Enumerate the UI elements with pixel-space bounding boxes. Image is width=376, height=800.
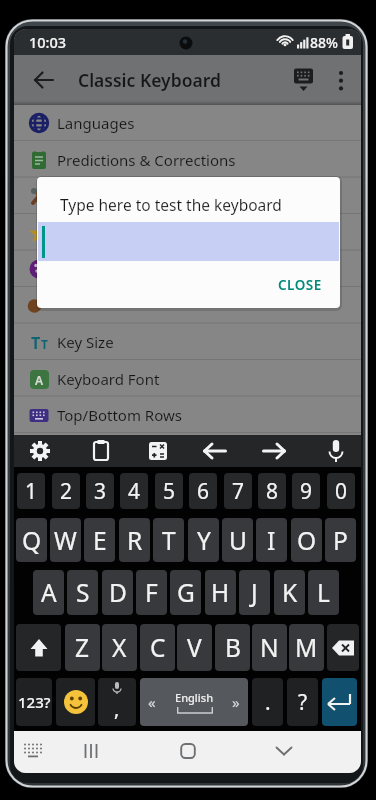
- button[interactable]: G: [170, 570, 201, 615]
- button[interactable]: O: [291, 518, 322, 562]
- button[interactable]: 7: [224, 473, 252, 509]
- staticText: Type here to test the keyboard: [60, 194, 282, 215]
- button[interactable]: D: [102, 570, 133, 615]
- button[interactable]: 6: [189, 473, 217, 509]
- staticText: V: [187, 631, 202, 664]
- button[interactable]: X: [102, 624, 137, 671]
- button[interactable]: 3: [86, 473, 114, 509]
- button[interactable]: Z: [65, 624, 100, 671]
- staticText: 9: [300, 477, 313, 506]
- staticText: Key Size: [57, 332, 114, 352]
- button[interactable]: F: [136, 570, 167, 615]
- staticText: L: [317, 576, 330, 609]
- button[interactable]: 9: [292, 473, 320, 509]
- button[interactable]: «: [140, 678, 248, 726]
- button[interactable]: J: [239, 570, 270, 615]
- button[interactable]: [85, 435, 117, 467]
- button[interactable]: N: [252, 624, 287, 671]
- button[interactable]: Y: [188, 518, 219, 562]
- button[interactable]: [290, 67, 317, 93]
- button[interactable]: V: [177, 624, 212, 671]
- staticText: H: [211, 576, 230, 609]
- staticText: C: [150, 631, 166, 664]
- button[interactable]: T: [153, 518, 184, 562]
- staticText: O: [297, 524, 317, 557]
- button[interactable]: Q: [16, 518, 47, 562]
- button[interactable]: 4: [120, 473, 148, 509]
- button[interactable]: [322, 678, 357, 726]
- button[interactable]: B: [215, 624, 250, 671]
- staticText: T: [31, 332, 41, 352]
- button[interactable]: [14, 215, 361, 251]
- button[interactable]: [15, 733, 51, 771]
- staticText: 123?: [18, 692, 51, 712]
- staticText: 10:03: [29, 32, 67, 52]
- staticText: Languages: [57, 113, 135, 133]
- button[interactable]: [258, 435, 290, 467]
- button[interactable]: 1: [17, 473, 45, 509]
- button[interactable]: C: [140, 624, 175, 671]
- button[interactable]: M: [289, 624, 324, 671]
- button[interactable]: I: [256, 518, 287, 562]
- button[interactable]: [142, 435, 174, 467]
- staticText: F: [145, 576, 158, 609]
- button[interactable]: P: [325, 518, 356, 562]
- staticText: A: [41, 576, 57, 609]
- staticText: Q: [22, 524, 42, 557]
- button[interactable]: 0: [327, 473, 355, 509]
- button[interactable]: [199, 435, 231, 467]
- button[interactable]: 8: [258, 473, 286, 509]
- button[interactable]: K: [274, 570, 305, 615]
- button[interactable]: [14, 178, 361, 214]
- button[interactable]: 123?: [16, 678, 52, 726]
- staticText: 5: [163, 477, 176, 506]
- button[interactable]: U: [222, 518, 253, 562]
- button[interactable]: [330, 68, 352, 94]
- button[interactable]: [73, 733, 109, 771]
- button[interactable]: ,: [98, 678, 136, 726]
- button[interactable]: Top/Bottom Rows: [14, 397, 361, 433]
- button[interactable]: [38, 222, 339, 261]
- staticText: N: [260, 631, 279, 664]
- staticText: CLOSE: [278, 276, 322, 294]
- button[interactable]: ?: [287, 678, 318, 726]
- staticText: Predictions & Corrections: [57, 150, 236, 170]
- staticText: I: [267, 524, 276, 557]
- button[interactable]: .: [252, 678, 283, 726]
- button[interactable]: 5: [155, 473, 183, 509]
- button[interactable]: [266, 733, 302, 771]
- button[interactable]: [30, 66, 58, 94]
- button[interactable]: A: [33, 570, 64, 615]
- button[interactable]: S: [67, 570, 98, 615]
- staticText: 2: [60, 477, 73, 506]
- button[interactable]: H: [205, 570, 236, 615]
- staticText: Keyboard Font: [57, 369, 160, 389]
- button[interactable]: [24, 435, 56, 467]
- staticText: R: [127, 524, 143, 557]
- staticText: 6: [197, 477, 210, 506]
- button[interactable]: CLOSE: [265, 270, 335, 300]
- button[interactable]: A: [14, 361, 361, 397]
- button[interactable]: W: [50, 518, 81, 562]
- button[interactable]: 2: [52, 473, 80, 509]
- button[interactable]: [14, 288, 361, 324]
- button[interactable]: [320, 435, 352, 467]
- button[interactable]: L: [308, 570, 339, 615]
- button[interactable]: [14, 251, 361, 287]
- staticText: A: [35, 372, 44, 388]
- button[interactable]: E: [84, 518, 115, 562]
- staticText: X: [112, 631, 127, 664]
- staticText: Y: [197, 524, 211, 557]
- button[interactable]: [327, 624, 359, 671]
- button[interactable]: [56, 678, 95, 726]
- button[interactable]: [170, 733, 206, 771]
- staticText: 0: [335, 477, 348, 506]
- button[interactable]: [16, 624, 61, 671]
- button[interactable]: Languages: [14, 105, 361, 141]
- staticText: Z: [75, 631, 90, 664]
- button[interactable]: Predictions & Corrections: [14, 142, 361, 178]
- staticText: T: [162, 524, 176, 557]
- staticText: G: [177, 576, 195, 609]
- button[interactable]: R: [119, 518, 150, 562]
- button[interactable]: T: [14, 324, 361, 360]
